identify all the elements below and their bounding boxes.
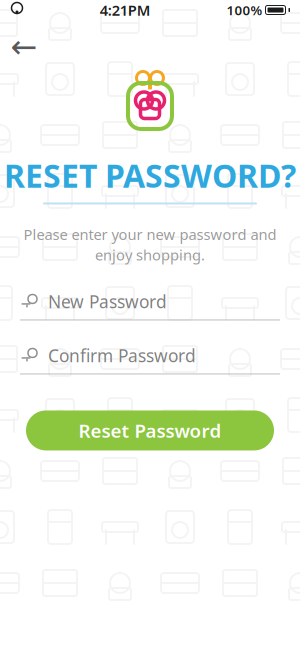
staticText: Reset Password [78,418,221,443]
staticText: Confirm Password [48,344,196,367]
button[interactable]: Reset Password [26,410,274,450]
staticText: RESET PASSWORD? [4,154,296,196]
staticText: ← [10,29,37,65]
staticText: enjoy shopping. [95,245,205,264]
staticText: 4:21PM [100,0,151,20]
staticText: 100% [226,1,262,19]
button[interactable]: Back [4,30,44,64]
staticText: Please enter your new password and [23,224,276,244]
staticText: New Password [48,290,167,313]
